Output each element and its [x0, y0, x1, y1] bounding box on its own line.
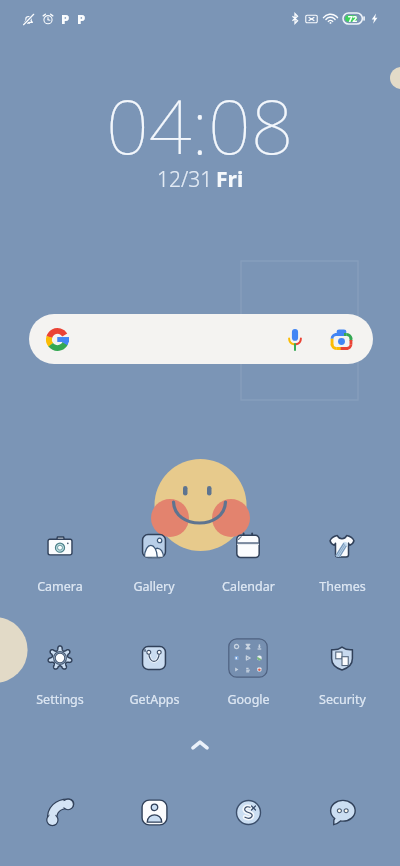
staticText: P — [61, 10, 70, 28]
button[interactable] — [22, 520, 98, 572]
button[interactable]: Google Lens — [325, 323, 357, 355]
button[interactable]: Voice search — [29, 314, 373, 364]
staticText: Calendar — [222, 578, 275, 595]
staticText: 72 — [348, 13, 358, 24]
button[interactable] — [116, 632, 192, 684]
button[interactable]: Contacts — [128, 786, 180, 838]
button[interactable]: Phone — [34, 786, 86, 838]
staticText: 04:08 — [106, 74, 294, 176]
button[interactable]: Browser — [222, 786, 274, 838]
staticText: Fri — [216, 165, 244, 194]
staticText: Camera — [37, 578, 83, 595]
staticText: Themes — [319, 578, 366, 595]
staticText: Settings — [36, 691, 84, 708]
button[interactable]: Open app drawer — [180, 730, 220, 760]
staticText: Gallery — [133, 578, 175, 595]
button[interactable] — [210, 632, 286, 684]
staticText: Security — [319, 691, 366, 708]
staticText: GetApps — [129, 691, 180, 708]
button[interactable] — [22, 632, 98, 684]
button[interactable]: Messages — [316, 786, 368, 838]
button[interactable] — [304, 520, 380, 572]
staticText: P — [77, 10, 86, 28]
staticText: Google — [227, 691, 270, 708]
staticText: 12/31 — [157, 165, 213, 194]
button[interactable] — [116, 520, 192, 572]
button[interactable] — [304, 632, 380, 684]
button[interactable]: Voice search — [279, 323, 311, 355]
button[interactable] — [210, 520, 286, 572]
